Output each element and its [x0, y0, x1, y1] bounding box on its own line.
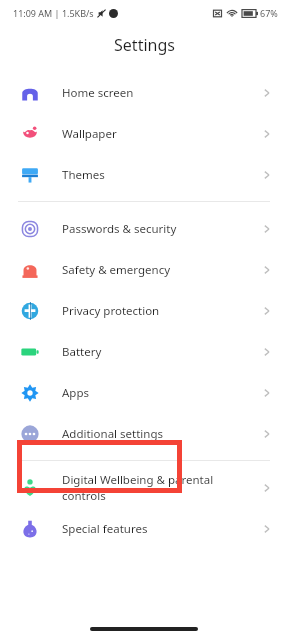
staticText: Themes: [62, 167, 262, 183]
button[interactable]: Digital Wellbeing & parental controls: [0, 467, 288, 508]
button[interactable]: Battery: [0, 331, 288, 372]
staticText: Special features: [62, 521, 262, 537]
staticText: Privacy protection: [62, 303, 262, 319]
staticText: Safety & emergency: [62, 262, 262, 278]
staticText: Wallpaper: [62, 126, 262, 142]
button[interactable]: Wallpaper: [0, 113, 288, 154]
staticText: 11:09 AM | 1.5KB/s: [13, 7, 94, 19]
staticText: Digital Wellbeing & parental controls: [62, 472, 262, 503]
button[interactable]: Passwords & security: [0, 208, 288, 249]
button[interactable]: Privacy protection: [0, 290, 288, 331]
button[interactable]: Additional settings: [0, 413, 288, 454]
button[interactable]: Safety & emergency: [0, 249, 288, 290]
button[interactable]: Special features: [0, 508, 288, 549]
button[interactable]: Apps: [0, 372, 288, 413]
staticText: Settings: [114, 34, 175, 56]
staticText: Apps: [62, 385, 262, 401]
staticText: Home screen: [62, 85, 262, 101]
staticText: Passwords & security: [62, 221, 262, 237]
staticText: Battery: [62, 344, 262, 360]
staticText: 67%: [260, 7, 278, 19]
button[interactable]: Home screen: [0, 72, 288, 113]
button[interactable]: Themes: [0, 154, 288, 195]
staticText: Additional settings: [62, 426, 262, 442]
